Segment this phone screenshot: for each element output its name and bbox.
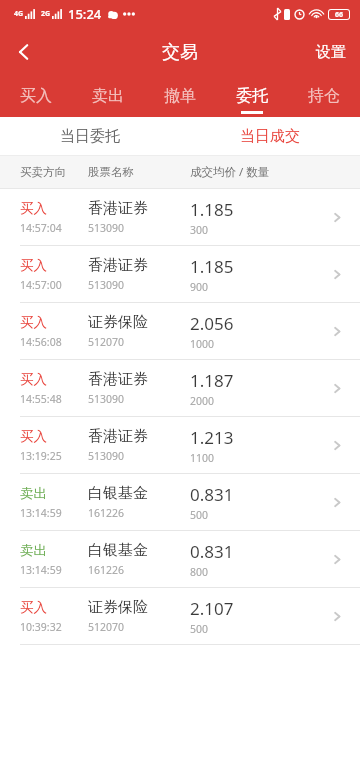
button[interactable]: 买入 <box>0 76 72 117</box>
staticText: 香港证券 <box>88 427 148 446</box>
button[interactable]: 设置 <box>316 43 346 62</box>
button[interactable]: 当日委托 <box>0 117 180 155</box>
button[interactable]: 卖出 <box>72 76 144 117</box>
staticText: 4G <box>14 9 24 19</box>
staticText: 513090 <box>88 221 125 235</box>
button[interactable]: 撤单 <box>144 76 216 117</box>
staticText: 14:57:00 <box>20 278 62 292</box>
staticText: 500 <box>190 508 209 522</box>
staticText: 1.213 <box>190 426 234 449</box>
button[interactable]: 买入 <box>0 189 360 246</box>
staticText: 设置 <box>316 43 346 62</box>
staticText: 513090 <box>88 449 125 463</box>
staticText: 卖出 <box>92 86 124 106</box>
staticText: 13:19:25 <box>20 449 62 463</box>
staticText: 2G <box>41 9 51 19</box>
staticText: 卖出 <box>20 542 47 559</box>
staticText: 当日成交 <box>240 127 300 146</box>
button[interactable]: 卖出 <box>0 474 360 531</box>
staticText: 161226 <box>88 506 125 520</box>
staticText: 香港证券 <box>88 256 148 275</box>
staticText: 500 <box>190 622 209 636</box>
staticText: 1000 <box>190 337 215 351</box>
staticText: 当日委托 <box>60 127 120 146</box>
staticText: 买入 <box>20 599 47 616</box>
staticText: 2000 <box>190 394 215 408</box>
staticText: 512070 <box>88 335 125 349</box>
staticText: 股票名称 <box>88 165 134 179</box>
staticText: 买入 <box>20 371 47 388</box>
staticText: 撤单 <box>164 86 196 106</box>
button[interactable]: 买入 <box>0 360 360 417</box>
staticText: 白银基金 <box>88 541 148 560</box>
staticText: 买入 <box>20 314 47 331</box>
staticText: 13:14:59 <box>20 563 62 577</box>
staticText: 513090 <box>88 278 125 292</box>
staticText: 1.185 <box>190 198 234 221</box>
staticText: 300 <box>190 223 209 237</box>
staticText: 513090 <box>88 392 125 406</box>
staticText: 买入 <box>20 200 47 217</box>
staticText: 14:57:04 <box>20 221 62 235</box>
staticText: 买入 <box>20 428 47 445</box>
staticText: 900 <box>190 280 209 294</box>
staticText: 委托 <box>236 86 268 106</box>
staticText: 800 <box>190 565 209 579</box>
button[interactable]: Back <box>0 28 48 76</box>
staticText: 证券保险 <box>88 313 148 332</box>
staticText: 0.831 <box>190 483 234 506</box>
staticText: 卖出 <box>20 485 47 502</box>
staticText: 买卖方向 <box>20 165 66 179</box>
button[interactable]: 买入 <box>0 417 360 474</box>
staticText: 512070 <box>88 620 125 634</box>
staticText: 香港证券 <box>88 199 148 218</box>
staticText: 2.107 <box>190 597 234 620</box>
staticText: 买入 <box>20 86 52 106</box>
staticText: 14:55:48 <box>20 392 62 406</box>
staticText: 白银基金 <box>88 484 148 503</box>
button[interactable]: 买入 <box>0 246 360 303</box>
staticText: 1100 <box>190 451 215 465</box>
button[interactable]: 买入 <box>0 588 360 645</box>
staticText: 2.056 <box>190 312 234 335</box>
staticText: 买入 <box>20 257 47 274</box>
staticText: 证券保险 <box>88 598 148 617</box>
staticText: 成交均价 / 数量 <box>190 164 270 180</box>
staticText: 1.185 <box>190 255 234 278</box>
staticText: 14:56:08 <box>20 335 62 349</box>
button[interactable]: 当日成交 <box>180 117 360 155</box>
staticText: 66 <box>335 10 344 19</box>
button[interactable]: 委托 <box>216 76 288 117</box>
staticText: 161226 <box>88 563 125 577</box>
staticText: 10:39:32 <box>20 620 62 634</box>
staticText: 交易 <box>162 41 198 64</box>
staticText: 香港证券 <box>88 370 148 389</box>
staticText: 13:14:59 <box>20 506 62 520</box>
staticText: 1.187 <box>190 369 234 392</box>
staticText: 0.831 <box>190 540 234 563</box>
button[interactable]: 买入 <box>0 303 360 360</box>
staticText: 15:24 <box>68 5 102 23</box>
button[interactable]: 持仓 <box>288 76 360 117</box>
button[interactable]: 卖出 <box>0 531 360 588</box>
staticText: 持仓 <box>308 86 340 106</box>
